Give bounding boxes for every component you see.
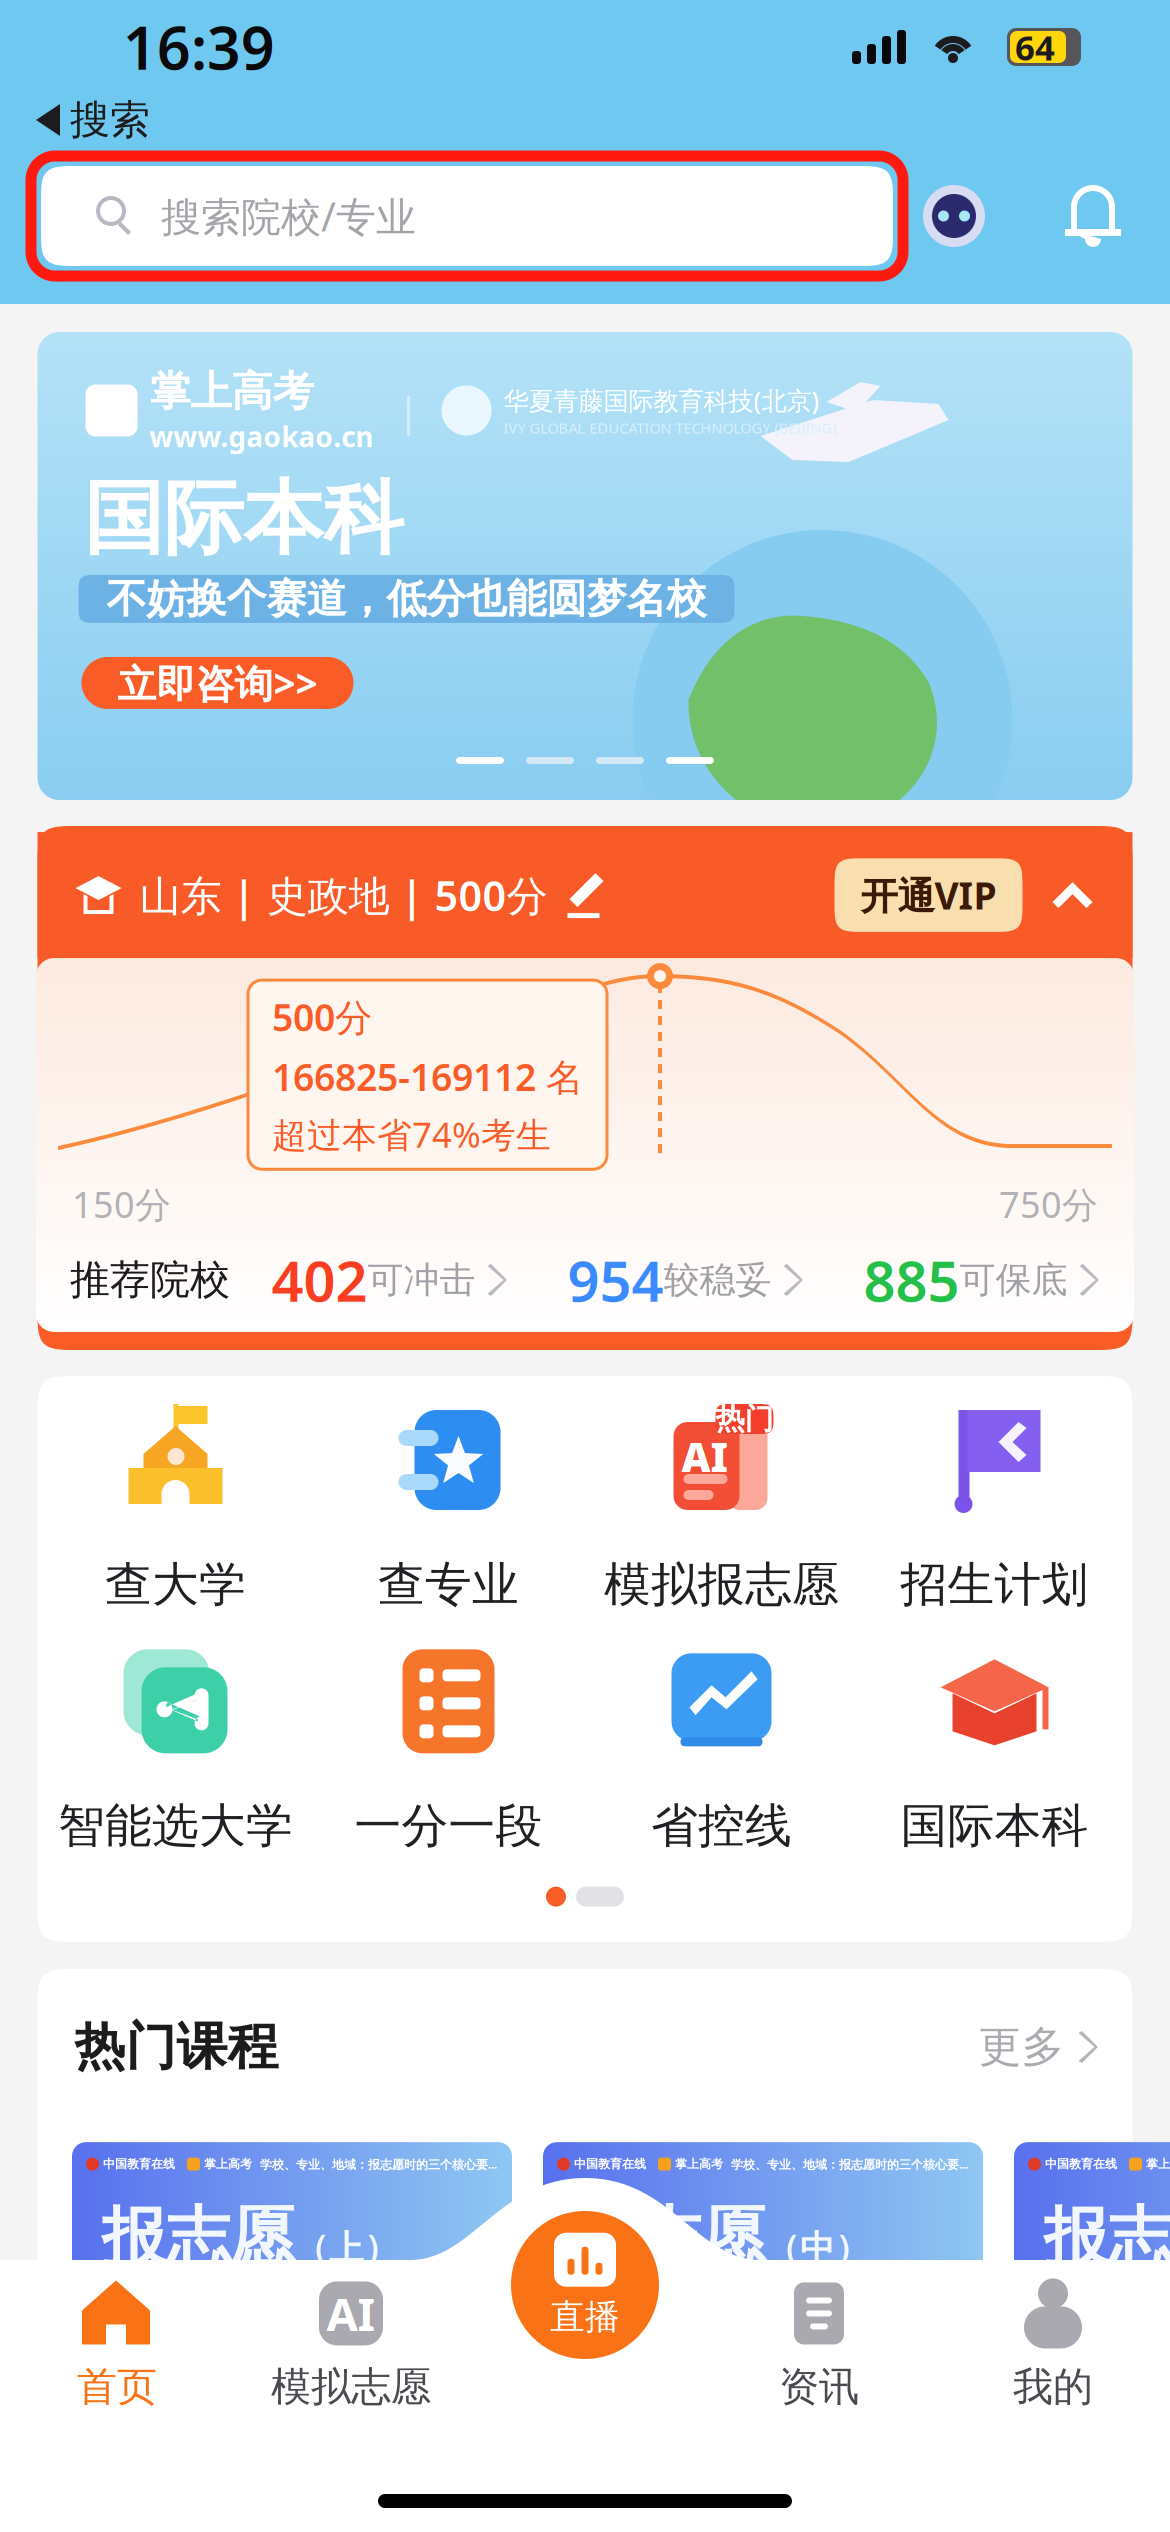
staticText: 可冲击 bbox=[367, 1258, 475, 1302]
staticText: 学校、专业、地域：报志愿时的三个核心要领 bbox=[260, 2156, 498, 2172]
button[interactable]: 954 bbox=[536, 1243, 832, 1317]
staticText: （上） bbox=[294, 2227, 399, 2270]
staticText: 可保底 bbox=[959, 1258, 1067, 1302]
button[interactable]: 开通VIP bbox=[834, 858, 1022, 932]
staticText: 省控线 bbox=[651, 1797, 792, 1855]
button[interactable]: 智能选大学 bbox=[39, 1645, 312, 1855]
staticText: 搜索 bbox=[70, 95, 150, 144]
staticText: 查大学 bbox=[105, 1556, 246, 1613]
button[interactable]: 搜索 bbox=[0, 94, 1170, 146]
button[interactable]: 一分一段 bbox=[312, 1645, 585, 1855]
button[interactable]: 查专业 bbox=[312, 1404, 585, 1613]
staticText: 查专业 bbox=[378, 1556, 519, 1613]
staticText: 750分 bbox=[999, 1180, 1098, 1228]
button[interactable]: 中国教育在线 bbox=[1014, 2142, 1170, 2394]
staticText: 更多 bbox=[978, 2021, 1064, 2073]
staticText: 150分 bbox=[72, 1180, 171, 1228]
staticText: 中国教育在线 bbox=[574, 2157, 646, 2171]
staticText: 首页 bbox=[77, 2362, 157, 2411]
staticText: 掌上高考 bbox=[675, 2157, 723, 2171]
staticText: 国际本科 bbox=[900, 1797, 1088, 1855]
staticText: 资讯 bbox=[779, 2362, 859, 2411]
staticText: 885 bbox=[863, 1243, 959, 1317]
button[interactable]: 中国教育在线 bbox=[543, 2142, 983, 2394]
staticText: IVY GLOBAL EDUCATION TECHNOLOGY (BEIJING… bbox=[503, 418, 836, 438]
staticText: 较稳妥 bbox=[663, 1258, 771, 1302]
button[interactable]: 查大学 bbox=[39, 1404, 312, 1613]
staticText: 中国教育在线 bbox=[1045, 2157, 1117, 2171]
staticText: 开通VIP bbox=[860, 870, 996, 920]
button[interactable]: 直播 bbox=[511, 2211, 659, 2359]
staticText: 立即咨询>> bbox=[117, 657, 317, 709]
staticText: 我的 bbox=[1013, 2362, 1093, 2411]
staticText: 报志愿 bbox=[573, 2198, 765, 2277]
staticText: 掌上高考 bbox=[1146, 2157, 1170, 2171]
staticText: 直播 bbox=[550, 2296, 620, 2338]
staticText: AI bbox=[326, 2283, 375, 2343]
button[interactable]: 省控线 bbox=[585, 1645, 858, 1855]
staticText: 山东 | 史政地 | 500分 bbox=[139, 868, 547, 923]
staticText: 热门课程 bbox=[74, 2016, 278, 2078]
staticText: 中国教育在线 bbox=[103, 2157, 175, 2171]
staticText: AI bbox=[681, 1430, 728, 1483]
button[interactable]: 掌上高考 bbox=[37, 332, 1132, 800]
button[interactable]: 收起 bbox=[1048, 876, 1096, 914]
staticText: 模拟报志愿 bbox=[604, 1556, 839, 1613]
staticText: 500分 bbox=[272, 992, 372, 1042]
button[interactable]: AI bbox=[234, 2270, 468, 2420]
staticText: 超过本省74%考生 bbox=[272, 1111, 551, 1157]
button[interactable]: AI 助手 bbox=[917, 179, 991, 253]
staticText: 学校、专业、地域：报志愿时的三个核心要领 bbox=[731, 2156, 969, 2172]
staticText: www.gaokao.cn bbox=[149, 418, 373, 455]
staticText: 402 bbox=[271, 1243, 367, 1317]
staticText: 166825-169112 名 bbox=[272, 1052, 583, 1101]
button[interactable]: 885 bbox=[832, 1243, 1128, 1317]
button[interactable]: 国际本科 bbox=[858, 1645, 1131, 1855]
staticText: 国际本科 bbox=[83, 470, 403, 568]
staticText: 不妨换个赛道，低分也能圆梦名校 bbox=[106, 574, 706, 623]
staticText: 一分一段 bbox=[354, 1797, 542, 1855]
staticText: （中） bbox=[765, 2227, 870, 2270]
button[interactable]: 我的 bbox=[936, 2270, 1170, 2420]
staticText: 搜索院校/专业 bbox=[161, 189, 416, 242]
button[interactable]: 402 bbox=[240, 1243, 536, 1317]
staticText: | bbox=[397, 384, 419, 437]
staticText: 招生计划 bbox=[900, 1556, 1088, 1613]
staticText: 推荐院校 bbox=[70, 1255, 230, 1304]
staticText: 报志愿 bbox=[1044, 2198, 1170, 2277]
button[interactable]: 中国教育在线 bbox=[72, 2142, 512, 2394]
button[interactable]: 搜索院校/专业 bbox=[31, 156, 903, 276]
staticText: 16:39 bbox=[123, 8, 275, 86]
staticText: 智能选大学 bbox=[58, 1797, 293, 1855]
staticText: 华夏青藤国际教育科技(北京) bbox=[503, 383, 819, 417]
staticText: 954 bbox=[567, 1243, 663, 1317]
staticText: 报志愿 bbox=[102, 2198, 294, 2277]
button[interactable]: 资讯 bbox=[702, 2270, 936, 2420]
staticText: 掌上高考 bbox=[149, 366, 313, 417]
button[interactable]: AI bbox=[585, 1404, 858, 1613]
button[interactable]: 更多 bbox=[978, 2021, 1096, 2073]
staticText: 模拟志愿 bbox=[271, 2362, 431, 2411]
button[interactable]: 招生计划 bbox=[858, 1404, 1131, 1613]
button[interactable]: 首页 bbox=[0, 2270, 234, 2420]
staticText: 掌上高考 bbox=[204, 2157, 252, 2171]
button[interactable]: 通知 bbox=[1062, 183, 1124, 249]
staticText: 热门 bbox=[715, 1401, 773, 1437]
staticText: 64 bbox=[1015, 24, 1055, 70]
